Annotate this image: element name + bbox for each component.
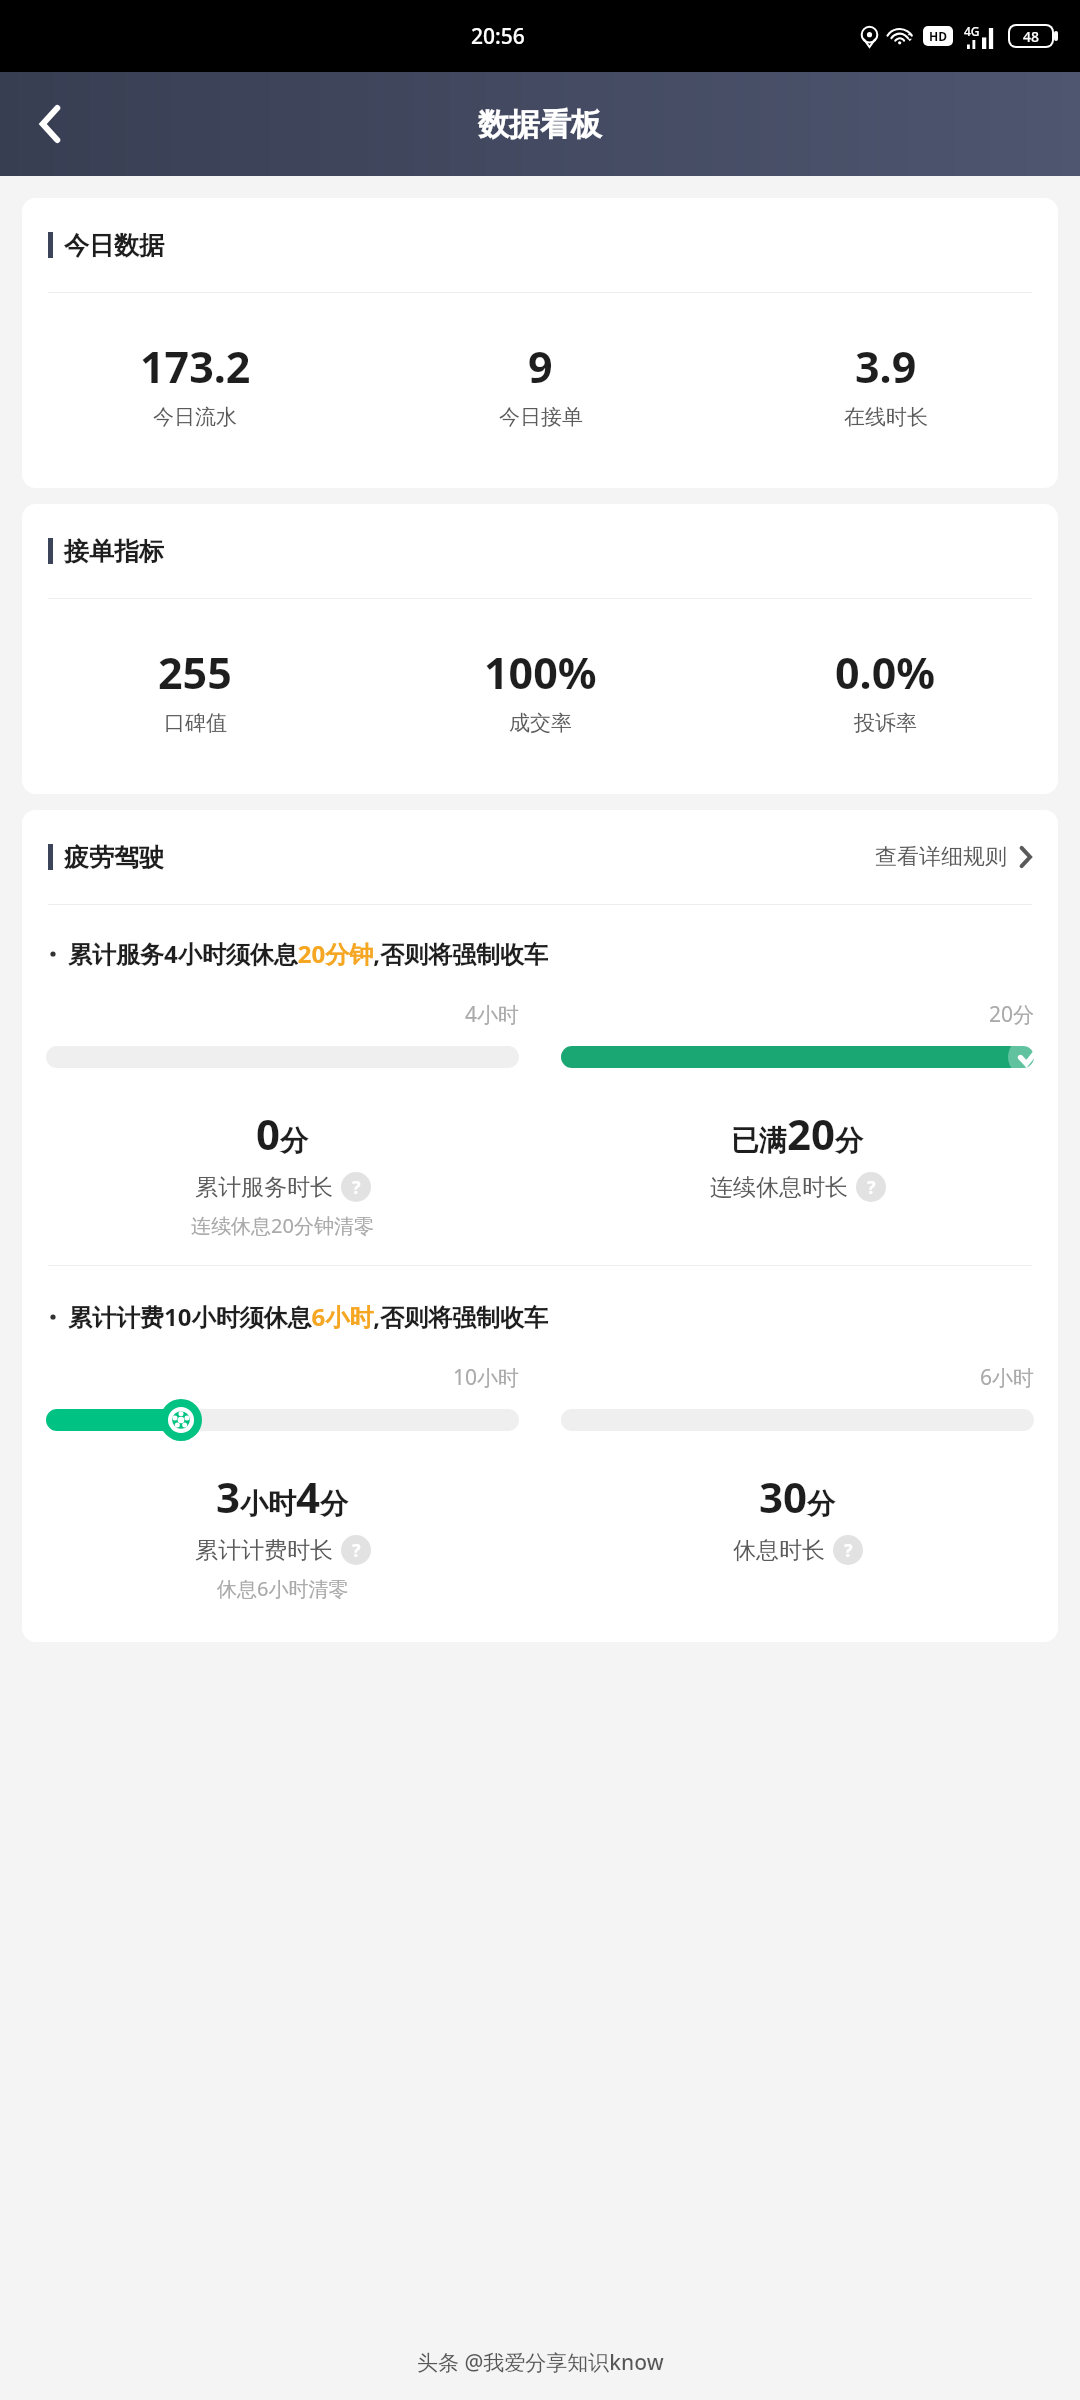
staticText: 数据看板 <box>478 105 602 144</box>
staticText: 9 <box>528 337 553 396</box>
staticText: 口碑值 <box>164 710 227 736</box>
staticText: 已满20分 <box>731 1105 864 1162</box>
staticText: ? <box>867 1175 876 1200</box>
staticText: 3小时4分 <box>216 1468 349 1525</box>
staticText: ? <box>352 1538 361 1563</box>
staticText: 疲劳驾驶 <box>64 842 164 873</box>
button[interactable]: 帮助 <box>833 1535 863 1565</box>
staticText: 成交率 <box>509 710 572 736</box>
button[interactable]: 查看详细规则 <box>875 837 1032 877</box>
staticText: 20分 <box>561 1000 1034 1029</box>
staticText: 在线时长 <box>844 404 928 430</box>
staticText: 查看详细规则 <box>875 843 1007 871</box>
button[interactable]: 帮助 <box>856 1172 886 1202</box>
staticText: 4G <box>964 23 980 39</box>
staticText: 100% <box>484 643 597 702</box>
staticText: 6小时 <box>561 1363 1034 1392</box>
staticText: ? <box>844 1538 853 1563</box>
staticText: 累计计费10小时须休息6小时,否则将强制收车 <box>68 1300 549 1333</box>
staticText: 48 <box>1023 27 1040 46</box>
staticText: 累计服务4小时须休息20分钟,否则将强制收车 <box>68 937 549 970</box>
staticText: 投诉率 <box>854 710 917 736</box>
staticText: 今日数据 <box>64 230 164 261</box>
staticText: 今日流水 <box>153 404 237 430</box>
button[interactable]: 帮助 <box>341 1535 371 1565</box>
staticText: 头条 @我爱分享知识know <box>417 2348 664 2377</box>
staticText: 30分 <box>759 1468 836 1525</box>
staticText: 休息6小时清零 <box>217 1575 349 1602</box>
staticText: 10小时 <box>46 1363 519 1392</box>
staticText: 0.0% <box>835 643 936 702</box>
staticText: 接单指标 <box>64 536 164 567</box>
button[interactable]: Back <box>18 92 82 156</box>
staticText: 累计服务时长 <box>195 1173 333 1202</box>
staticText: 255 <box>158 643 232 702</box>
staticText: 20:56 <box>471 22 525 51</box>
staticText: 今日接单 <box>499 404 583 430</box>
staticText: HD <box>929 28 947 44</box>
staticText: ? <box>352 1175 361 1200</box>
staticText: 0分 <box>256 1105 309 1162</box>
staticText: 3.9 <box>855 337 917 396</box>
staticText: 4小时 <box>46 1000 519 1029</box>
staticText: 连续休息时长 <box>710 1173 848 1202</box>
staticText: 累计计费时长 <box>195 1536 333 1565</box>
staticText: 173.2 <box>140 337 251 396</box>
staticText: 休息时长 <box>733 1536 825 1565</box>
staticText: 连续休息20分钟清零 <box>191 1212 374 1239</box>
button[interactable]: 帮助 <box>341 1172 371 1202</box>
